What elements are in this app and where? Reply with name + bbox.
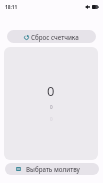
- button[interactable]: Выбрать молитву: [5, 163, 99, 175]
- staticText: 0: [50, 116, 53, 122]
- button[interactable]: 0: [4, 47, 98, 160]
- staticText: 0: [50, 104, 53, 110]
- staticText: Сброс счетчика: [31, 33, 79, 41]
- staticText: 18:11: [5, 4, 18, 11]
- button[interactable]: Сброс счетчика: [7, 30, 96, 43]
- staticText: 0: [47, 82, 55, 100]
- staticText: Выбрать молитву: [26, 165, 80, 173]
